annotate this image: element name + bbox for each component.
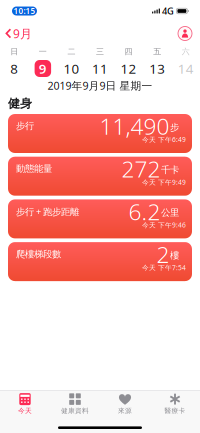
button[interactable]: 來源 — [100, 390, 150, 415]
staticText: 今天 下午6:49 — [142, 135, 186, 144]
button[interactable]: 五 — [143, 46, 171, 77]
staticText: 13 — [149, 60, 165, 77]
button[interactable]: 六 — [171, 46, 200, 77]
staticText: 10:15 — [13, 6, 35, 16]
button[interactable]: 健康資料 — [50, 390, 100, 415]
staticText: 動態能量 — [16, 163, 52, 174]
staticText: 五 — [153, 47, 161, 56]
staticText: 二 — [67, 47, 75, 56]
staticText: 醫療卡 — [164, 407, 185, 415]
staticText: 三 — [96, 47, 104, 56]
staticText: 今天 — [18, 407, 32, 415]
staticText: 來源 — [118, 407, 132, 415]
button[interactable]: 四 — [114, 46, 143, 77]
staticText: 今天 下午9:46 — [142, 220, 186, 229]
staticText: 公里 — [161, 207, 179, 218]
staticText: 12 — [121, 60, 137, 77]
button[interactable]: 醫療卡 — [150, 390, 200, 415]
button[interactable]: 三 — [86, 46, 114, 77]
staticText: 8 — [10, 60, 18, 77]
staticText: 9 — [39, 60, 47, 77]
button[interactable]: 步行 — [8, 114, 192, 153]
staticText: 10 — [63, 60, 79, 77]
staticText: 今天 下午7:54 — [142, 263, 186, 272]
staticText: 14 — [178, 60, 194, 77]
staticText: 11 — [92, 60, 108, 77]
staticText: 今天 下午9:49 — [142, 178, 186, 187]
staticText: 4G — [162, 5, 174, 17]
button[interactable]: 今天 — [0, 390, 50, 415]
staticText: 千卡 — [161, 164, 179, 176]
button[interactable]: 二 — [57, 46, 86, 77]
staticText: 健康資料 — [61, 407, 89, 415]
staticText: 健身 — [8, 96, 32, 111]
button[interactable]: 動態能量 — [8, 157, 192, 196]
staticText: 2 — [156, 239, 169, 269]
button[interactable]: 爬樓梯段數 — [8, 242, 192, 281]
staticText: 步行 + 跑步距離 — [16, 205, 79, 218]
button[interactable]: 日 — [0, 46, 29, 77]
button[interactable]: 一 — [29, 46, 57, 77]
button[interactable]: 個人檔案 — [177, 25, 200, 41]
staticText: 六 — [182, 47, 190, 56]
staticText: 日 — [10, 47, 18, 56]
staticText: 2019年9月9日 星期一 — [47, 78, 152, 93]
staticText: 爬樓梯段數 — [16, 248, 61, 260]
staticText: 步 — [170, 121, 179, 133]
staticText: 一 — [39, 47, 47, 56]
button[interactable]: 步行 + 跑步距離 — [8, 199, 192, 238]
staticText: 樓 — [170, 250, 179, 261]
staticText: 11,490 — [99, 111, 169, 141]
staticText: 9月 — [13, 25, 32, 41]
staticText: 272 — [121, 154, 160, 184]
staticText: 6.2 — [128, 196, 160, 226]
staticText: 步行 — [16, 120, 34, 132]
button[interactable]: 9月 — [0, 22, 32, 44]
staticText: 四 — [125, 47, 133, 56]
